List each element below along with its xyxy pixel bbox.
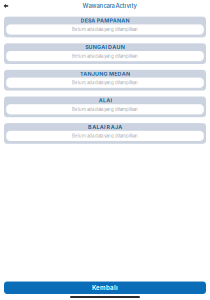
staticText: ALAI <box>99 97 111 104</box>
staticText: Belum ada data yang ditampilkan <box>72 107 138 112</box>
staticText: Belum ada data yang ditampilkan <box>72 133 138 138</box>
staticText: BALAI RAJA <box>88 124 122 130</box>
staticText: SUNGAI DAUN <box>85 44 125 50</box>
staticText: Belum ada data yang ditampilkan <box>72 80 138 85</box>
staticText: Kembali <box>92 284 118 291</box>
button[interactable]: Kembali <box>4 281 206 294</box>
staticText: TANJUNG MEDAN <box>80 70 130 77</box>
staticText: Belum ada data yang ditampilkan <box>72 27 138 32</box>
button[interactable]: Back <box>0 1 12 10</box>
staticText: DESA PAMPANAN <box>80 17 129 24</box>
staticText: Belum ada data yang ditampilkan <box>72 53 138 59</box>
staticText: Wawancara Activity <box>82 2 136 9</box>
